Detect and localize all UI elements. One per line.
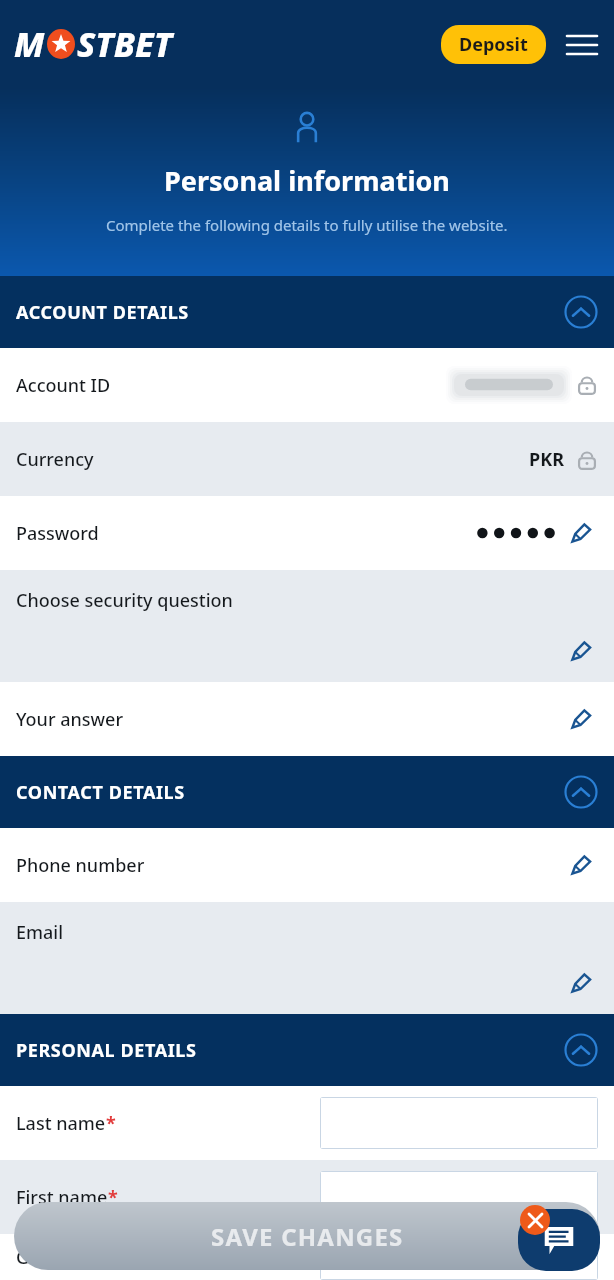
staticText: M xyxy=(14,21,45,67)
staticText: * xyxy=(108,1185,118,1210)
staticText: Choose security question xyxy=(16,588,233,613)
staticText: Personal information xyxy=(164,162,450,199)
staticText: * xyxy=(85,1245,95,1270)
staticText: SAVE CHANGES xyxy=(211,1220,404,1253)
button[interactable]: Email xyxy=(0,902,614,1014)
button[interactable]: Menu xyxy=(564,27,600,63)
button[interactable]: Account ID xyxy=(0,348,614,422)
staticText: Complete the following details to fully … xyxy=(106,215,508,235)
staticText: STBET xyxy=(77,21,173,67)
button[interactable]: Phone number xyxy=(0,828,614,902)
staticText: Currency xyxy=(16,447,94,472)
button[interactable]: ACCOUNT DETAILS xyxy=(0,276,614,348)
staticText: * xyxy=(106,1111,116,1136)
button[interactable]: First name xyxy=(0,1160,614,1234)
button[interactable]: CONTACT DETAILS xyxy=(0,756,614,828)
staticText: ACCOUNT DETAILS xyxy=(16,300,189,325)
button[interactable]: Last name xyxy=(0,1086,614,1160)
button[interactable]: Chat xyxy=(518,1209,600,1271)
button[interactable]: Your answer xyxy=(0,682,614,756)
button[interactable]: Edit xyxy=(564,966,598,1000)
staticText: PKR xyxy=(529,447,564,472)
button[interactable]: Edit xyxy=(564,516,598,550)
button[interactable]: Edit xyxy=(564,848,598,882)
staticText: First name xyxy=(16,1185,108,1210)
staticText: Gender: xyxy=(16,1245,85,1270)
button[interactable]: SAVE CHANGES xyxy=(14,1202,600,1270)
staticText: Deposit xyxy=(459,32,528,57)
button[interactable]: M xyxy=(14,21,173,67)
button[interactable]: Edit xyxy=(564,702,598,736)
staticText: Email xyxy=(16,920,64,945)
button[interactable]: Gender: xyxy=(0,1234,614,1280)
button[interactable]: Choose security question xyxy=(0,570,614,682)
button[interactable]: Close chat xyxy=(520,1205,550,1235)
button[interactable]: Password xyxy=(0,496,614,570)
staticText: Password xyxy=(16,521,99,546)
staticText: Phone number xyxy=(16,853,145,878)
staticText: PERSONAL DETAILS xyxy=(16,1038,197,1063)
button[interactable]: Deposit xyxy=(441,25,546,64)
button[interactable]: Currency xyxy=(0,422,614,496)
button[interactable]: PERSONAL DETAILS xyxy=(0,1014,614,1086)
button[interactable]: Edit xyxy=(564,634,598,668)
staticText: Last name xyxy=(16,1111,106,1136)
staticText: Your answer xyxy=(16,707,123,732)
staticText: Account ID xyxy=(16,373,111,398)
staticText: CONTACT DETAILS xyxy=(16,780,185,805)
